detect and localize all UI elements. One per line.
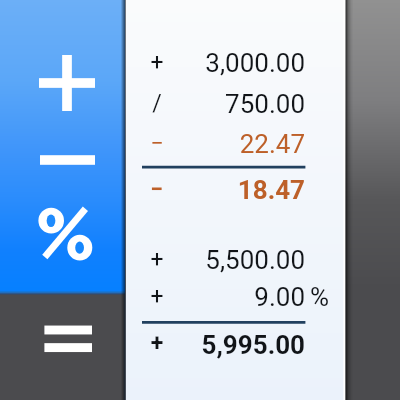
button[interactable]: Calculator keypad	[0, 0, 125, 400]
staticText: 3,000.00	[165, 48, 305, 78]
staticText: +	[149, 246, 165, 273]
staticText: −	[149, 176, 165, 203]
staticText: 750.00	[165, 89, 305, 119]
staticText: +	[149, 330, 165, 357]
staticText: 5,500.00	[165, 245, 305, 275]
staticText: 5,995.00	[165, 330, 305, 360]
staticText: 9.00	[165, 282, 305, 312]
staticText: %	[310, 282, 330, 312]
staticText: +	[149, 49, 165, 76]
staticText: 18.47	[165, 175, 305, 205]
staticText: /	[149, 90, 165, 117]
staticText: 22.47	[165, 129, 305, 159]
other: Plus minus percent equals keys	[0, 0, 400, 400]
staticText: −	[149, 130, 165, 157]
staticText: +	[149, 283, 165, 310]
